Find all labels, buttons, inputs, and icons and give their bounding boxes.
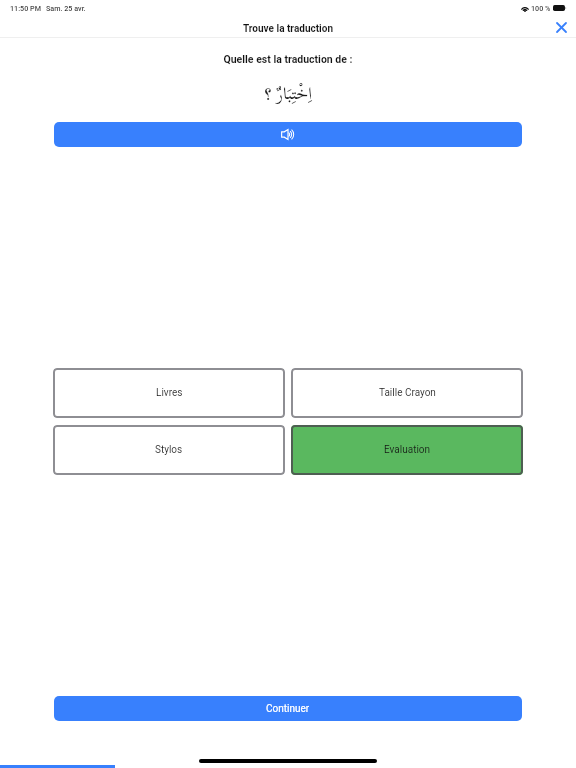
button[interactable]: Continuer: [54, 696, 522, 721]
staticText: Taille Crayon: [379, 387, 436, 399]
staticText: Livres: [156, 387, 183, 399]
staticText: Quelle est la traduction de :: [0, 53, 576, 65]
staticText: 100 %: [531, 4, 551, 12]
staticText: Stylos: [155, 444, 183, 456]
button[interactable]: Livres: [53, 368, 285, 418]
button[interactable]: Play pronunciation: [54, 122, 522, 147]
staticText: Sam. 25 avr.: [46, 4, 86, 12]
button[interactable]: Stylos: [53, 425, 285, 475]
staticText: Continuer: [266, 703, 310, 715]
button[interactable]: Evaluation: [291, 425, 523, 475]
staticText: Trouve la traduction: [243, 23, 333, 35]
staticText: اِخْتِبَارٌ ؟: [0, 76, 576, 111]
staticText: 11:50 PM: [10, 4, 41, 12]
staticText: Evaluation: [384, 444, 431, 456]
button[interactable]: Taille Crayon: [291, 368, 523, 418]
button[interactable]: Close: [550, 18, 572, 37]
